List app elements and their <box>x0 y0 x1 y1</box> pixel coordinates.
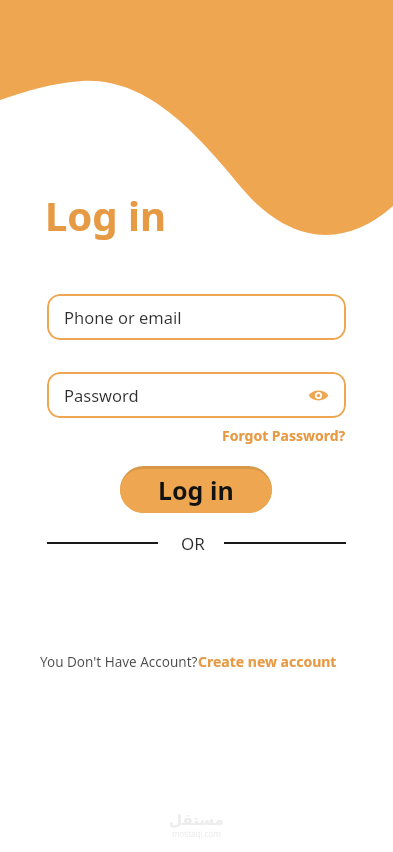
staticText: Log in <box>158 473 234 507</box>
staticText: Create new account <box>198 652 337 671</box>
staticText: Password <box>64 384 306 406</box>
staticText: مستقل <box>169 811 224 828</box>
staticText: Phone or email <box>64 306 330 328</box>
button[interactable]: Create new account <box>198 652 337 671</box>
staticText: mostaqi.com <box>172 828 221 839</box>
staticText: OR <box>181 532 205 555</box>
staticText: Forgot Password? <box>222 426 346 445</box>
button[interactable]: Log in <box>120 466 272 513</box>
staticText: Log in <box>45 188 166 242</box>
button[interactable]: Password <box>47 372 346 418</box>
button[interactable]: Phone or email <box>47 294 346 340</box>
staticText: You Don't Have Account? <box>40 653 198 671</box>
button[interactable]: Show password <box>306 383 330 407</box>
button[interactable]: Forgot Password? <box>222 426 346 445</box>
